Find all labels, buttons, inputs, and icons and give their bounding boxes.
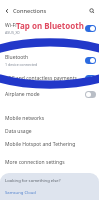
staticText: Wi-Fi (5, 22, 17, 29)
button[interactable]: Switch on (85, 75, 96, 82)
staticText: Connections (13, 7, 47, 15)
button[interactable]: Mobile networks (0, 111, 99, 126)
staticText: Data usage (5, 128, 32, 135)
button[interactable]: Back (0, 4, 13, 17)
staticText: ASUS_X0 (5, 30, 20, 35)
button[interactable]: Bluetooth (0, 52, 99, 68)
button[interactable]: Switch off (85, 91, 96, 98)
staticText: Airplane mode (5, 91, 40, 98)
staticText: Mobile Hotspot and Tethering (5, 141, 76, 148)
button[interactable]: More connection settings (0, 155, 99, 170)
button[interactable]: Wi-Fi (0, 20, 99, 36)
button[interactable]: NFC and contactless payments (0, 70, 99, 86)
staticText: Tap on Bluetooth (16, 20, 85, 31)
button[interactable]: Looking for something else? (0, 173, 99, 200)
button[interactable]: Mobile Hotspot and Tethering (0, 137, 99, 152)
staticText: 1 device connected (5, 62, 38, 67)
staticText: Mobile networks (5, 115, 45, 122)
staticText: Samsung Cloud (5, 190, 36, 196)
button[interactable]: Switch on (85, 25, 96, 32)
staticText: Looking for something else? (5, 178, 61, 184)
button[interactable]: Data usage (0, 124, 99, 139)
button[interactable]: Switch on (85, 57, 96, 64)
button[interactable]: Search (85, 4, 99, 18)
staticText: NFC and contactless payments (5, 75, 77, 82)
staticText: More connection settings (5, 159, 65, 166)
staticText: Bluetooth (5, 54, 29, 61)
button[interactable]: Airplane mode (0, 86, 99, 102)
